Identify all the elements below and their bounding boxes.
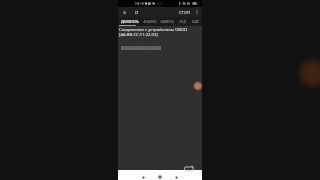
other: Screenshot bbox=[183, 165, 194, 171]
button[interactable]: ОБД bbox=[176, 17, 189, 26]
staticText: ЗАМЕРЫ bbox=[160, 20, 174, 24]
button[interactable]: Home bbox=[155, 172, 165, 180]
staticText: СТОП bbox=[179, 10, 190, 15]
button[interactable]: ЗАМЕРЫ bbox=[158, 17, 176, 26]
button[interactable]: More options bbox=[194, 9, 200, 15]
button[interactable]: СТОП bbox=[178, 10, 191, 15]
button[interactable]: ПРЕРВАТЬ СОЕДИНЕНИЕ bbox=[121, 46, 161, 50]
button[interactable]: ДВИГАТЕЛЬ bbox=[118, 17, 141, 26]
button[interactable]: Recent apps bbox=[171, 172, 181, 180]
staticText: ПРЕРВАТЬ СОЕДИНЕНИЕ bbox=[123, 46, 159, 50]
staticText: ОБД bbox=[179, 20, 186, 24]
staticText: [AA:BB:CC:11:22:33] bbox=[119, 32, 158, 38]
button[interactable]: ЕЩЁ bbox=[189, 17, 202, 26]
staticText: АНАЛИЗ bbox=[143, 20, 157, 24]
button[interactable]: Bluetooth adapter bbox=[133, 9, 140, 16]
staticText: ЕЩЁ bbox=[192, 20, 199, 24]
button[interactable]: АНАЛИЗ bbox=[141, 17, 158, 26]
button[interactable]: Connection state bbox=[121, 9, 128, 16]
staticText: Соединение с устройством OBDII bbox=[119, 27, 187, 33]
staticText: ДВИГАТЕЛЬ bbox=[121, 20, 139, 24]
button[interactable]: Back bbox=[138, 172, 148, 180]
